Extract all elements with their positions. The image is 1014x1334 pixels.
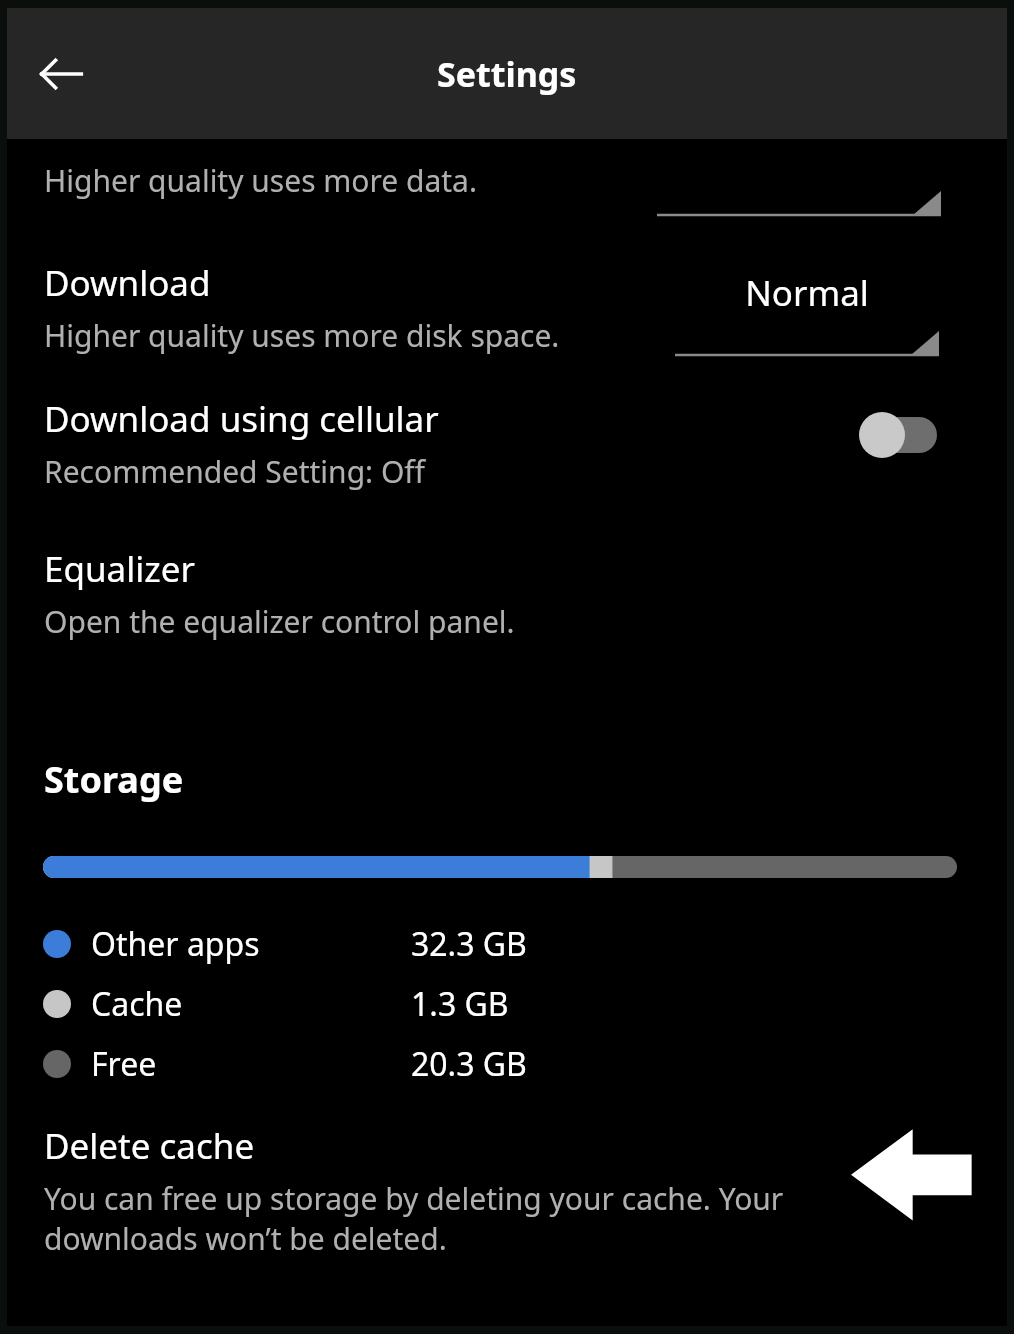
staticText: You can free up storage by deleting your…	[44, 1178, 834, 1259]
staticText: Free	[91, 1042, 411, 1086]
button[interactable]: Download	[7, 243, 1007, 383]
button[interactable]: Download using cellular toggle	[845, 401, 955, 469]
staticText: Other apps	[91, 922, 411, 966]
button[interactable]: Cache	[7, 974, 1007, 1034]
button[interactable]: Back	[21, 33, 103, 115]
staticText: 32.3 GB	[411, 922, 527, 966]
button[interactable]: Free	[7, 1034, 1007, 1094]
staticText: 20.3 GB	[411, 1042, 527, 1086]
staticText: Delete cache	[44, 1122, 255, 1170]
button[interactable]: Delete cache	[44, 1122, 834, 1259]
staticText: Cache	[91, 982, 411, 1026]
button[interactable]	[657, 185, 941, 217]
staticText: 1.3 GB	[411, 982, 509, 1026]
staticText: Higher quality uses more disk space.	[44, 315, 560, 356]
staticText: Equalizer	[44, 545, 195, 593]
button[interactable]: Other apps	[7, 914, 1007, 974]
button[interactable]: Download using cellular	[7, 383, 1007, 533]
button[interactable]: Equalizer	[7, 533, 1007, 683]
staticText: Download using cellular	[44, 395, 439, 443]
staticText: Normal	[675, 269, 939, 317]
button[interactable]: Normal	[675, 269, 939, 357]
staticText: Storage	[44, 755, 184, 804]
staticText: Open the equalizer control panel.	[44, 601, 515, 642]
staticText: Download	[44, 259, 211, 307]
staticText: Recommended Setting: Off	[44, 451, 425, 492]
staticText: Settings	[437, 51, 577, 97]
staticText: Higher quality uses more data.	[44, 160, 477, 201]
